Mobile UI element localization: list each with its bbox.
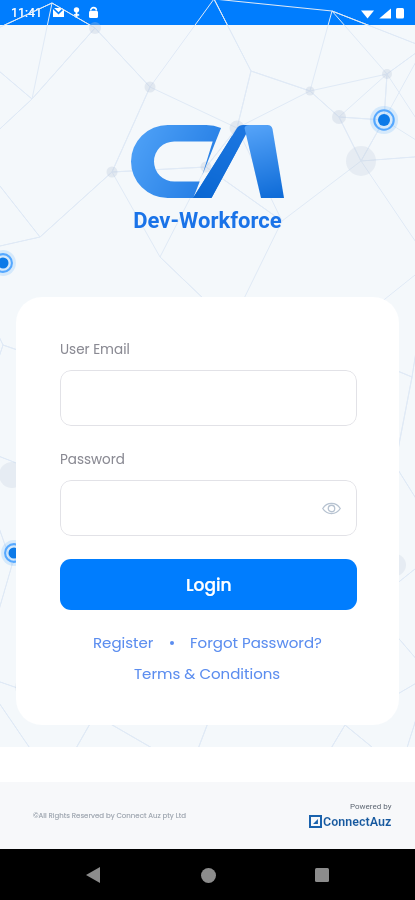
button[interactable]	[60, 370, 357, 426]
button[interactable]: Back	[71, 853, 115, 897]
staticText: Password	[60, 450, 125, 469]
button[interactable]: Register	[93, 632, 154, 653]
button[interactable]: Show password	[318, 495, 344, 521]
staticText: Terms & Conditions	[134, 663, 281, 684]
staticText: Login	[186, 573, 232, 597]
button[interactable]: Forgot Password?	[190, 632, 322, 653]
button[interactable]: Terms & Conditions	[134, 663, 281, 684]
staticText: Forgot Password?	[190, 632, 322, 653]
button[interactable]: Login	[60, 559, 357, 610]
staticText: Powered by	[350, 802, 392, 811]
staticText: User Email	[60, 340, 130, 359]
staticText: Dev-Workforce	[0, 208, 415, 234]
button[interactable]: Home	[186, 853, 230, 897]
staticText: ConnectAuz	[323, 814, 392, 829]
staticText: ©All Rights Reserved by Connect Auz pty …	[33, 811, 186, 821]
button[interactable]: Recent apps	[300, 853, 344, 897]
button[interactable]: Show password	[60, 480, 357, 536]
staticText: Register	[93, 632, 154, 653]
staticText: 11:41	[11, 5, 43, 20]
